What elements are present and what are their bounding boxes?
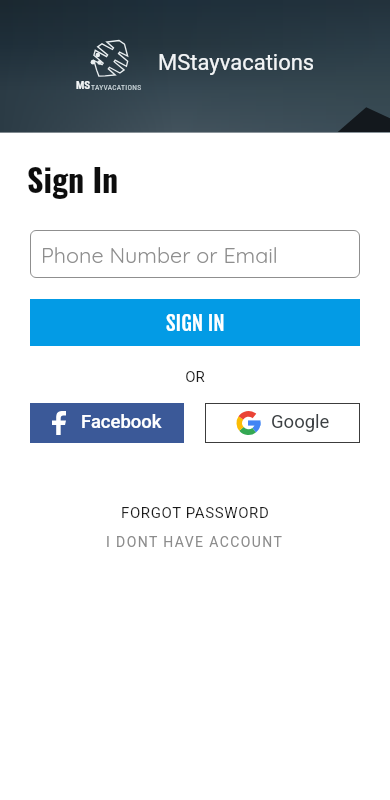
staticText: Phone Number or Email xyxy=(41,241,278,268)
staticText: Facebook xyxy=(81,411,162,433)
staticText: I DONT HAVE ACCOUNT xyxy=(106,534,284,550)
button[interactable]: I DONT HAVE ACCOUNT xyxy=(0,532,390,552)
button[interactable]: Phone Number or Email xyxy=(30,230,360,278)
staticText: MStayvacations xyxy=(158,50,315,76)
button[interactable]: FORGOT PASSWORD xyxy=(0,503,390,523)
button[interactable]: Google xyxy=(205,403,360,443)
staticText: TAYVACATIONS xyxy=(91,83,142,92)
staticText: FORGOT PASSWORD xyxy=(121,504,270,522)
button[interactable]: SIGN IN xyxy=(30,299,360,346)
button[interactable]: Facebook xyxy=(30,403,184,443)
staticText: SIGN IN xyxy=(166,310,225,336)
staticText: Google xyxy=(271,411,330,433)
staticText: Sign In xyxy=(27,155,119,202)
staticText: OR xyxy=(0,368,390,386)
staticText: MS xyxy=(76,79,91,92)
